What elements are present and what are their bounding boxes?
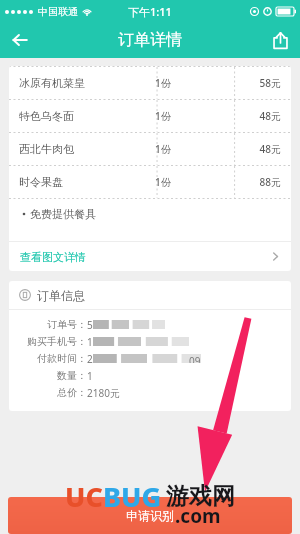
staticText: 2: [87, 352, 93, 366]
staticText: 5: [87, 318, 93, 332]
button[interactable]: Share: [260, 22, 300, 58]
staticText: BUG: [103, 478, 162, 515]
staticText: 付款时间：: [37, 352, 87, 365]
button[interactable]: 冰原有机菜皇: [9, 67, 291, 99]
staticText: 1: [87, 335, 93, 349]
staticText: 查看图文详情: [20, 250, 271, 264]
staticText: 48元: [226, 142, 281, 156]
staticText: 88元: [226, 175, 281, 189]
button[interactable]: 时令果盘: [9, 166, 291, 198]
button[interactable]: 西北牛肉包: [9, 133, 291, 165]
staticText: 特色乌冬面: [19, 109, 155, 123]
staticText: 下午1:11: [128, 4, 172, 19]
staticText: 西北牛肉包: [19, 142, 155, 156]
staticText: 购买手机号：: [27, 335, 87, 348]
button[interactable]: 查看图文详情: [9, 242, 291, 271]
staticText: 订单详情: [118, 30, 182, 50]
staticText: 时令果盘: [19, 175, 155, 189]
staticText: 冰原有机菜皇: [19, 76, 155, 90]
staticText: 订单号：: [47, 318, 87, 331]
staticText: 1份: [155, 175, 226, 189]
staticText: 09: [189, 354, 201, 363]
staticText: 中国联通: [38, 5, 78, 18]
staticText: 1: [87, 369, 93, 383]
staticText: 数量：: [57, 369, 87, 382]
staticText: 1份: [155, 109, 226, 123]
button[interactable]: 申请识别: [8, 497, 292, 534]
staticText: 48元: [226, 109, 281, 123]
staticText: 58元: [226, 76, 281, 90]
staticText: 订单信息: [37, 288, 85, 303]
button[interactable]: Back: [0, 22, 40, 58]
staticText: 1份: [155, 76, 226, 90]
button[interactable]: 特色乌冬面: [9, 100, 291, 132]
staticText: 2180元: [87, 386, 120, 400]
staticText: 总价：: [57, 386, 87, 399]
staticText: 1份: [155, 142, 226, 156]
staticText: UC: [65, 478, 103, 515]
staticText: 游戏网: [166, 482, 235, 511]
staticText: .com: [175, 503, 221, 529]
staticText: 申请识别: [126, 508, 174, 523]
staticText: 免费提供餐具: [30, 207, 96, 221]
